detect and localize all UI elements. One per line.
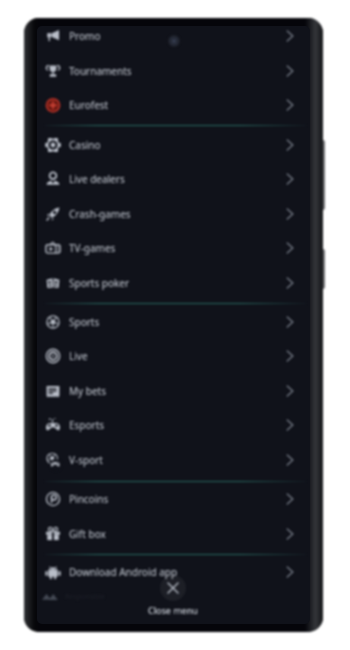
staticText: Eurofest (69, 98, 109, 112)
button[interactable]: V-sport (37, 443, 310, 477)
button[interactable]: Download Android app (37, 555, 310, 589)
button[interactable]: Sports poker (37, 266, 310, 300)
button[interactable]: Casino (37, 128, 310, 162)
staticText: Casino (69, 138, 101, 152)
button[interactable]: Live (37, 339, 310, 373)
staticText: Esports (69, 418, 105, 432)
staticText: My bets (69, 384, 106, 398)
staticText: Crash-games (69, 207, 131, 221)
button[interactable]: Close menu (143, 575, 203, 623)
staticText: Live (69, 349, 88, 363)
staticText: TV-games (69, 241, 116, 255)
staticText: Pincoins (69, 492, 109, 506)
staticText: V-sport (69, 453, 103, 467)
button[interactable]: Promo (37, 26, 310, 53)
staticText: Gift box (69, 527, 106, 541)
staticText: Promo (69, 29, 101, 43)
button[interactable]: Esports (37, 408, 310, 442)
button[interactable]: Pincoins (37, 482, 310, 516)
staticText: Sports poker (69, 276, 130, 290)
staticText: Download Android app (69, 565, 178, 579)
button[interactable]: Gift box (37, 517, 310, 551)
button[interactable]: Crash-games (37, 197, 310, 231)
button[interactable]: Tournaments (37, 54, 310, 88)
button[interactable]: My bets (37, 374, 310, 408)
button[interactable]: TV-games (37, 231, 310, 265)
staticText: Sports (69, 315, 100, 329)
button[interactable]: Sports (37, 305, 310, 339)
button[interactable]: Eurofest (37, 88, 310, 122)
staticText: Tournaments (69, 64, 132, 78)
staticText: Close menu (148, 604, 198, 616)
staticText: Live dealers (69, 172, 125, 186)
button[interactable]: Live dealers (37, 162, 310, 196)
